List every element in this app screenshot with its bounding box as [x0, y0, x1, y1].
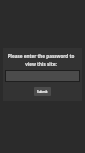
button[interactable]: Submit	[34, 87, 51, 96]
staticText: Please enter the password to view this s…	[5, 53, 77, 68]
staticText: Submit	[37, 90, 48, 94]
